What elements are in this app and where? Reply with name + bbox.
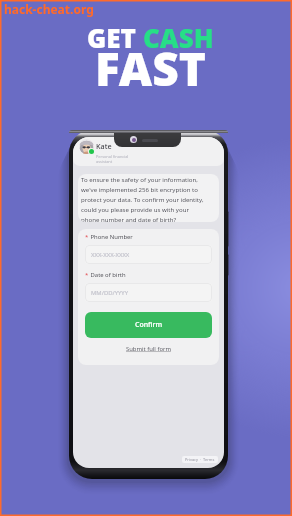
staticText: hack-cheat.org — [4, 1, 94, 17]
staticText: GET — [87, 20, 143, 55]
staticText: To ensure the safety of your information… — [81, 175, 204, 222]
button[interactable]: Submit full form — [85, 345, 212, 353]
staticText: MM/DD/YYYY — [91, 289, 129, 297]
button[interactable]: XXX-XXX-XXXX — [85, 245, 212, 264]
staticText: Date of birth — [89, 271, 126, 279]
staticText: assistant — [96, 159, 113, 164]
button[interactable]: Confirm — [85, 312, 212, 338]
staticText: * — [85, 233, 89, 241]
staticText: XXX-XXX-XXXX — [91, 251, 130, 259]
staticText: Kate — [96, 141, 112, 151]
staticText: Privacy · Terms — [185, 457, 215, 462]
staticText: Submit full form — [126, 345, 171, 353]
staticText: Personal financial — [96, 154, 129, 159]
staticText: * — [85, 271, 89, 279]
staticText: FAST — [95, 37, 206, 100]
staticText: Confirm — [135, 320, 163, 330]
staticText: CASH — [143, 20, 214, 55]
staticText: Phone Number — [89, 233, 133, 241]
button[interactable]: MM/DD/YYYY — [85, 283, 212, 302]
